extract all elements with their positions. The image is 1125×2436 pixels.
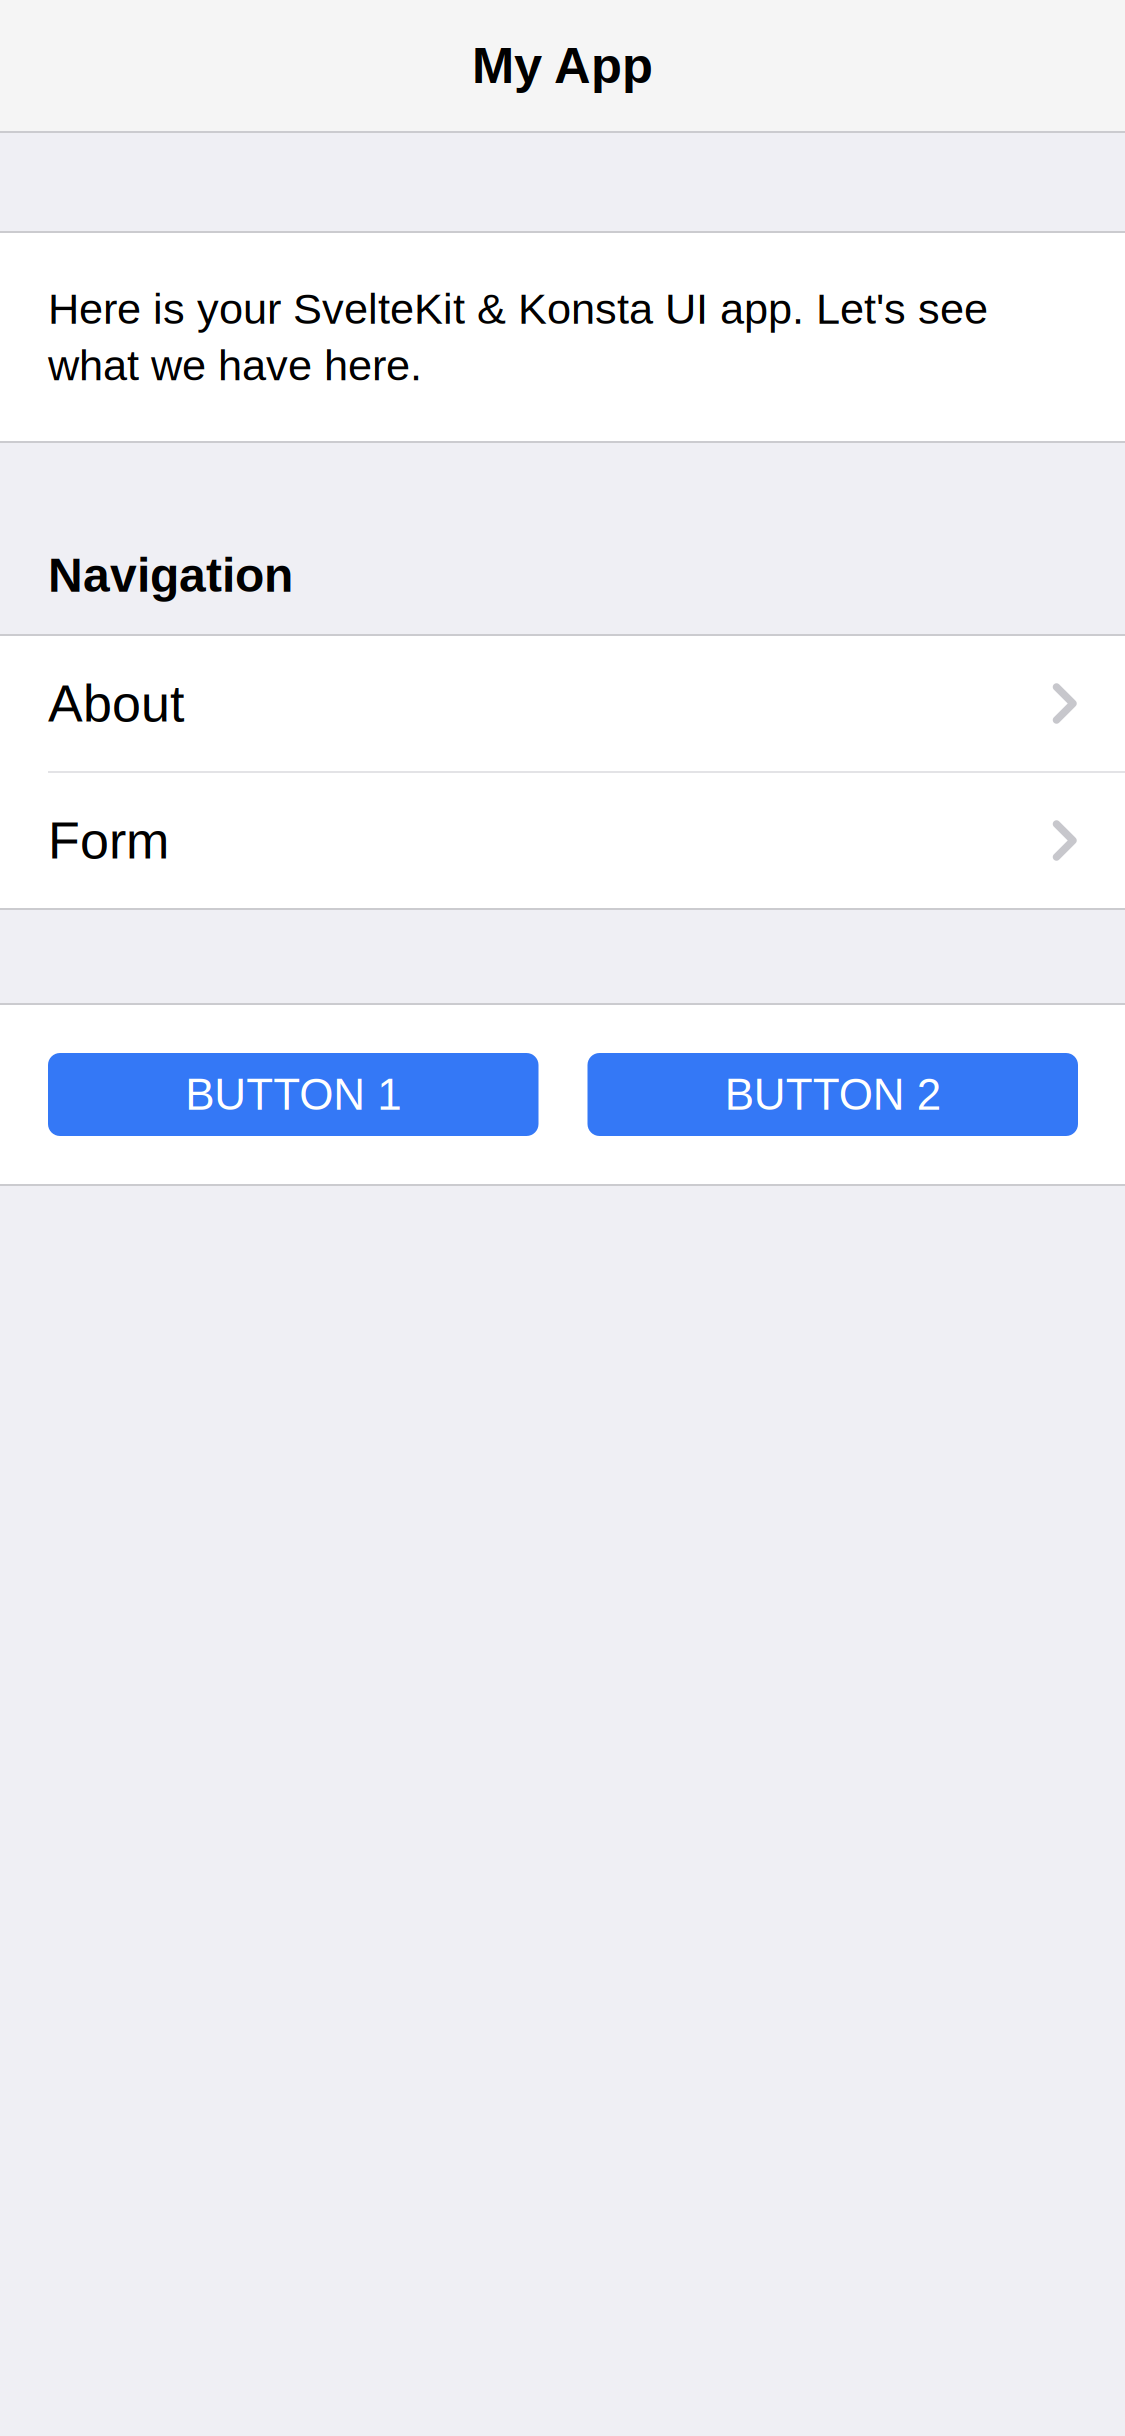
staticText: Navigation — [48, 548, 293, 602]
staticText: About — [48, 674, 184, 733]
staticText: My App — [472, 37, 653, 94]
staticText: BUTTON 2 — [725, 1070, 941, 1119]
button[interactable]: BUTTON 1 — [48, 1053, 538, 1136]
staticText: Form — [48, 811, 169, 870]
button[interactable]: BUTTON 2 — [587, 1053, 1078, 1136]
staticText: BUTTON 1 — [185, 1070, 401, 1119]
button[interactable]: Form — [0, 773, 1125, 908]
button[interactable]: About — [0, 636, 1125, 771]
staticText: Here is your SvelteKit & Konsta UI app. … — [48, 285, 988, 389]
